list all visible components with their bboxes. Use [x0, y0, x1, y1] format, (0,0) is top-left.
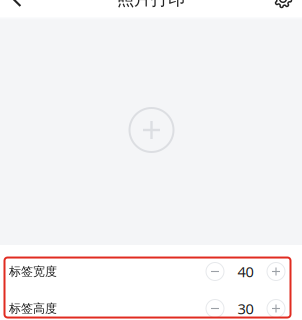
- button[interactable]: Increase: [267, 262, 285, 280]
- button[interactable]: Settings: [273, 0, 302, 9]
- button[interactable]: Back: [0, 0, 22, 6]
- staticText: 标签高度: [9, 301, 57, 316]
- button[interactable]: 标签宽度: [0, 253, 302, 290]
- button[interactable]: Decrease: [206, 299, 224, 317]
- button[interactable]: 标签高度: [0, 290, 302, 320]
- button[interactable]: Increase: [267, 299, 285, 317]
- staticText: 40: [237, 262, 253, 281]
- button[interactable]: Decrease: [206, 262, 224, 280]
- staticText: 标签宽度: [9, 264, 57, 279]
- staticText: 照片打印: [117, 0, 185, 10]
- staticText: 30: [237, 299, 253, 318]
